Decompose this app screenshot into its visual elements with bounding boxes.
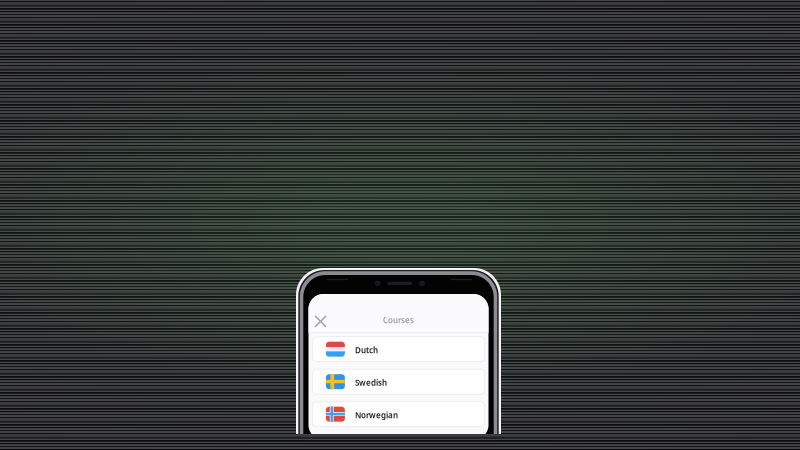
button[interactable]: Dutch [312,337,485,362]
button[interactable]: Swedish [312,369,485,394]
button[interactable]: Close [311,311,331,331]
staticText: Swedish [355,377,387,388]
staticText: Courses [383,315,414,325]
staticText: Dutch [355,345,378,355]
staticText: Norwegian [355,410,398,420]
button[interactable]: Norwegian [312,402,485,427]
